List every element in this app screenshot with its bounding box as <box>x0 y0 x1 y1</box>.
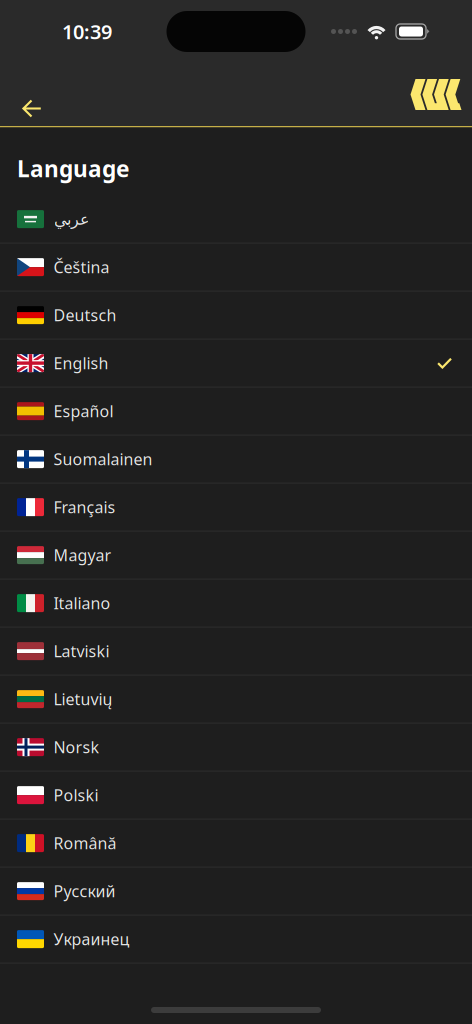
button[interactable]: Magyar <box>0 532 472 580</box>
button[interactable]: Back <box>10 71 54 118</box>
button[interactable]: Home <box>405 72 467 116</box>
staticText: Lietuvių <box>53 688 112 710</box>
button[interactable]: Italiano <box>0 580 472 628</box>
staticText: Deutsch <box>53 304 116 326</box>
staticText: English <box>53 352 108 374</box>
button[interactable]: Suomalainen <box>0 436 472 484</box>
button[interactable]: Čeština <box>0 244 472 292</box>
button[interactable]: English <box>0 340 472 388</box>
button[interactable]: Español <box>0 388 472 436</box>
staticText: Magyar <box>53 544 111 566</box>
staticText: Español <box>53 400 113 422</box>
button[interactable]: Polski <box>0 772 472 820</box>
staticText: Latviski <box>53 640 109 662</box>
staticText: Italiano <box>53 592 110 614</box>
button[interactable]: Deutsch <box>0 292 472 340</box>
button[interactable]: Română <box>0 820 472 868</box>
button[interactable]: عربي <box>0 196 472 244</box>
button[interactable]: Lietuvių <box>0 676 472 724</box>
staticText: Polski <box>53 784 98 806</box>
button[interactable]: Norsk <box>0 724 472 772</box>
button[interactable]: Latviski <box>0 628 472 676</box>
staticText: Norsk <box>53 736 99 758</box>
staticText: Suomalainen <box>53 448 152 470</box>
staticText: Украинец <box>53 928 129 950</box>
staticText: 10:39 <box>62 18 112 45</box>
staticText: Русский <box>53 880 115 902</box>
staticText: Français <box>53 496 115 518</box>
staticText: Română <box>53 832 116 854</box>
button[interactable]: Русский <box>0 868 472 916</box>
staticText: Language <box>17 153 130 184</box>
button[interactable]: Украинец <box>0 916 472 964</box>
staticText: عربي <box>53 210 89 228</box>
staticText: Čeština <box>53 256 109 278</box>
button[interactable]: Français <box>0 484 472 532</box>
